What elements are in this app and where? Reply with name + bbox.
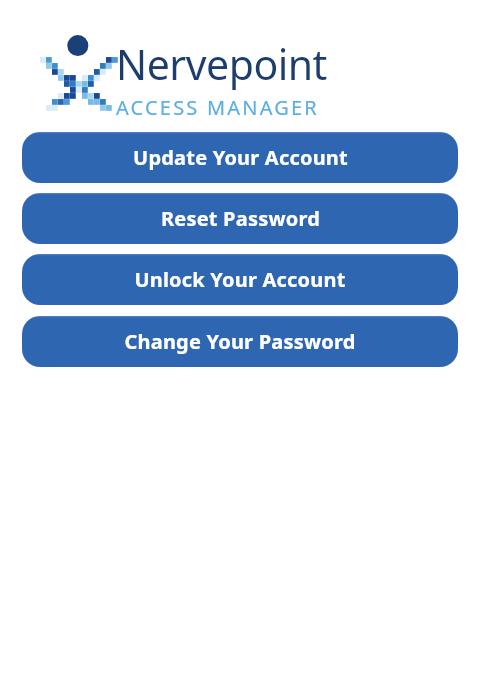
staticText: Nervepoint	[116, 36, 327, 92]
staticText: ACCESS MANAGER	[116, 94, 319, 121]
staticText: Reset Password	[161, 205, 320, 232]
button[interactable]: Reset Password	[22, 193, 458, 244]
staticText: Change Your Password	[124, 328, 356, 355]
staticText: Update Your Account	[133, 144, 348, 171]
staticText: Unlock Your Account	[134, 266, 346, 293]
button[interactable]: Update Your Account	[22, 132, 458, 183]
button[interactable]: Unlock Your Account	[22, 254, 458, 305]
button[interactable]: Change Your Password	[22, 316, 458, 367]
